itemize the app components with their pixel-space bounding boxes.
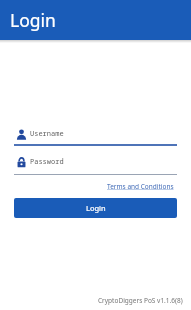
staticText: Username bbox=[30, 129, 64, 139]
button[interactable]: Username bbox=[14, 127, 177, 141]
staticText: Login bbox=[86, 203, 106, 213]
staticText: Password bbox=[30, 157, 64, 167]
staticText: CryptoDiggers PoS v1.1.6(8) bbox=[98, 296, 183, 305]
staticText: Login bbox=[10, 8, 56, 32]
button[interactable]: Terms and Conditions bbox=[107, 182, 177, 191]
button[interactable]: Password bbox=[14, 155, 177, 169]
button[interactable]: Login bbox=[14, 198, 177, 218]
